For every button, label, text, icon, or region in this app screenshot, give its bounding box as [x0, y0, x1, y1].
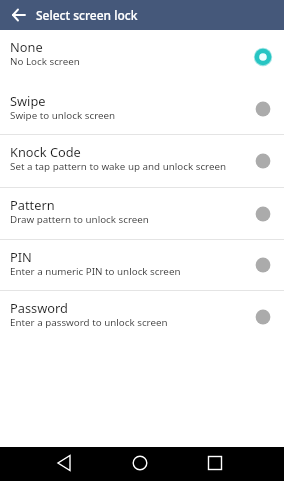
staticText: Enter a password to unlock screen: [10, 316, 168, 329]
staticText: Draw pattern to unlock screen: [10, 213, 149, 226]
button[interactable]: [126, 449, 154, 477]
button[interactable]: Pattern: [0, 188, 284, 239]
staticText: Knock Code: [10, 143, 81, 160]
button[interactable]: [201, 449, 229, 477]
button[interactable]: Password: [0, 291, 284, 343]
button[interactable]: [51, 449, 79, 477]
staticText: PIN: [10, 248, 32, 265]
staticText: Select screen lock: [36, 7, 138, 23]
staticText: None: [10, 38, 43, 55]
staticText: No Lock screen: [10, 55, 80, 68]
staticText: Swipe to unlock screen: [10, 109, 116, 122]
staticText: Swipe: [10, 92, 46, 109]
button[interactable]: PIN: [0, 240, 284, 290]
staticText: Password: [10, 299, 68, 316]
button[interactable]: [12, 8, 26, 22]
button[interactable]: None: [0, 30, 284, 84]
staticText: Pattern: [10, 196, 55, 213]
staticText: Enter a numeric PIN to unlock screen: [10, 265, 181, 278]
button[interactable]: Knock Code: [0, 135, 284, 187]
button[interactable]: Swipe: [0, 84, 284, 134]
staticText: Set a tap pattern to wake up and unlock …: [10, 160, 227, 173]
